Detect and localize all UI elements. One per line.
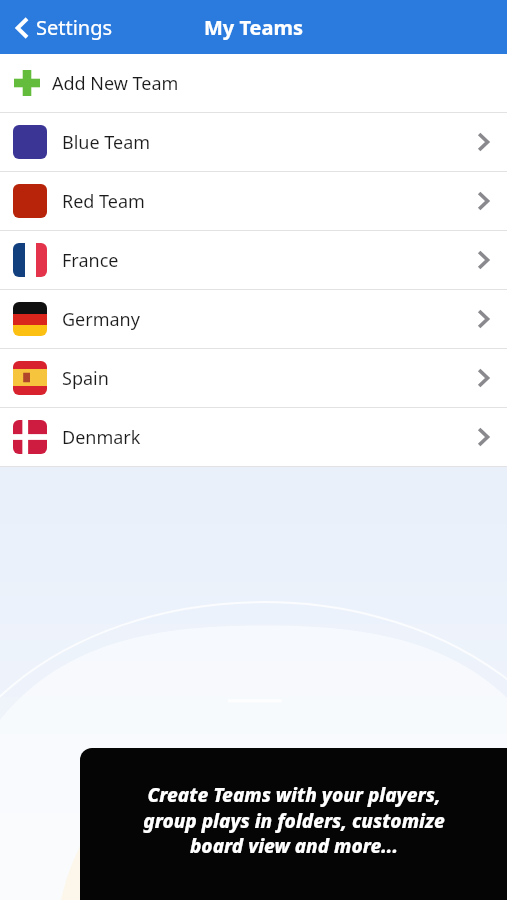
- button[interactable]: Settings: [10, 8, 119, 47]
- button[interactable]: Denmark: [0, 408, 507, 466]
- staticText: Create Teams with your players, group pl…: [143, 782, 445, 858]
- staticText: Settings: [36, 14, 113, 41]
- button[interactable]: Spain: [0, 349, 507, 407]
- staticText: Add New Team: [52, 71, 179, 96]
- button[interactable]: Add New Team: [0, 54, 507, 112]
- button[interactable]: Create Teams with your players, group pl…: [80, 748, 507, 900]
- button[interactable]: Red Team: [0, 172, 507, 230]
- staticText: Blue Team: [62, 130, 151, 155]
- staticText: Denmark: [62, 425, 141, 450]
- button[interactable]: France: [0, 231, 507, 289]
- staticText: Germany: [62, 307, 140, 332]
- staticText: Spain: [62, 366, 109, 391]
- staticText: My Teams: [204, 14, 304, 41]
- staticText: Red Team: [62, 189, 145, 214]
- button[interactable]: Blue Team: [0, 113, 507, 171]
- button[interactable]: Germany: [0, 290, 507, 348]
- staticText: France: [62, 248, 119, 273]
